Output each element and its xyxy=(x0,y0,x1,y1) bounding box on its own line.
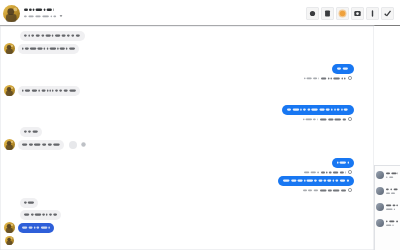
button[interactable] xyxy=(0,43,374,54)
button[interactable] xyxy=(332,158,354,168)
button[interactable] xyxy=(3,0,63,26)
button[interactable]: Archive xyxy=(321,7,334,20)
button[interactable] xyxy=(0,127,374,137)
button[interactable] xyxy=(278,176,354,186)
button[interactable]: Details xyxy=(366,7,379,20)
button[interactable] xyxy=(374,199,400,215)
button[interactable] xyxy=(282,105,354,115)
button[interactable]: Notifications xyxy=(336,7,349,20)
button[interactable]: Mute xyxy=(306,7,319,20)
button[interactable] xyxy=(374,167,400,183)
button[interactable] xyxy=(0,139,374,150)
button[interactable] xyxy=(0,198,374,208)
button[interactable]: Video call xyxy=(351,7,364,20)
button[interactable] xyxy=(374,215,400,231)
button[interactable] xyxy=(0,31,374,41)
button[interactable] xyxy=(0,85,374,96)
button[interactable]: Mark as done xyxy=(381,7,394,20)
button[interactable] xyxy=(374,183,400,199)
button[interactable] xyxy=(332,64,354,74)
button[interactable] xyxy=(0,210,374,220)
button[interactable] xyxy=(0,222,374,233)
